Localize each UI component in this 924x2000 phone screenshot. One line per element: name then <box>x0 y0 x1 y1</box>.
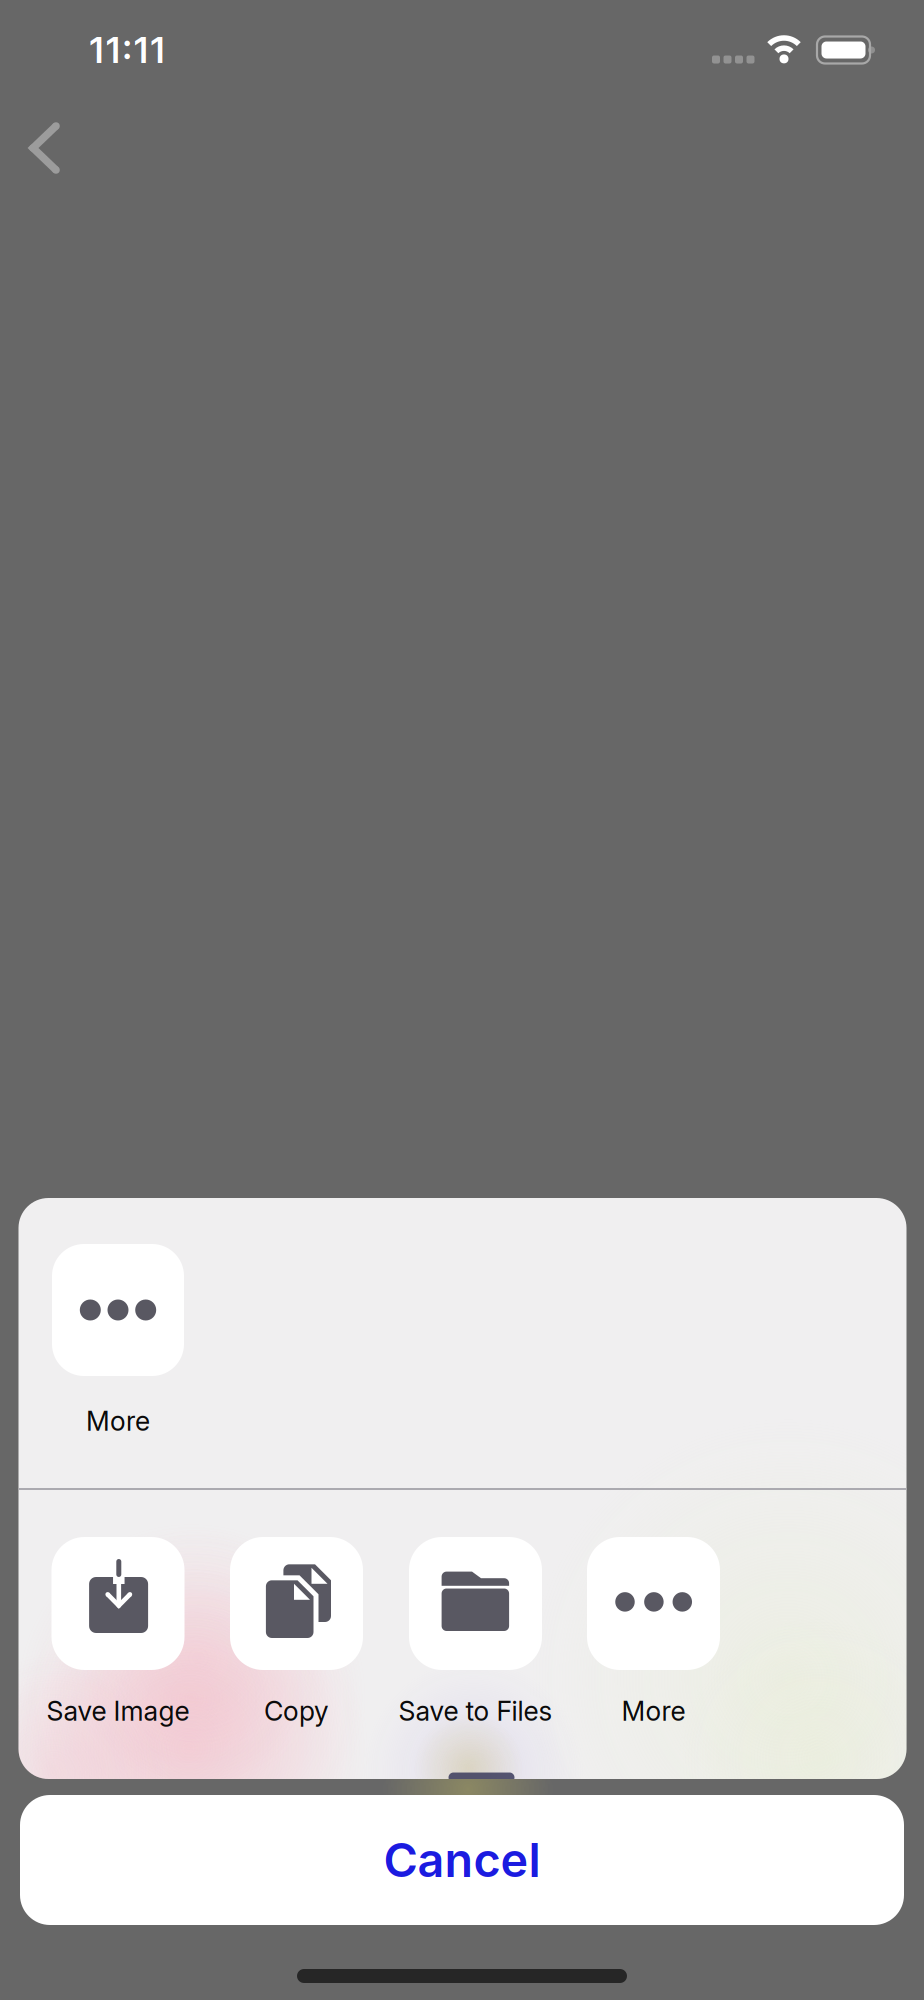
button[interactable]: More <box>29 1244 207 1442</box>
staticText: Save Image <box>46 1695 189 1727</box>
staticText: Save to Files <box>398 1695 552 1727</box>
button[interactable]: Copy <box>207 1537 385 1735</box>
staticText: More <box>621 1695 685 1727</box>
staticText: 11:11 <box>89 29 164 71</box>
button[interactable]: Cancel <box>20 1795 904 1925</box>
button[interactable]: Back <box>18 114 70 182</box>
staticText: Cancel <box>383 1832 540 1888</box>
button[interactable]: More <box>564 1537 742 1735</box>
staticText: Copy <box>264 1695 329 1727</box>
staticText: More <box>86 1405 150 1437</box>
button[interactable]: Save to Files <box>386 1537 564 1735</box>
button[interactable]: Save Image <box>29 1537 207 1735</box>
